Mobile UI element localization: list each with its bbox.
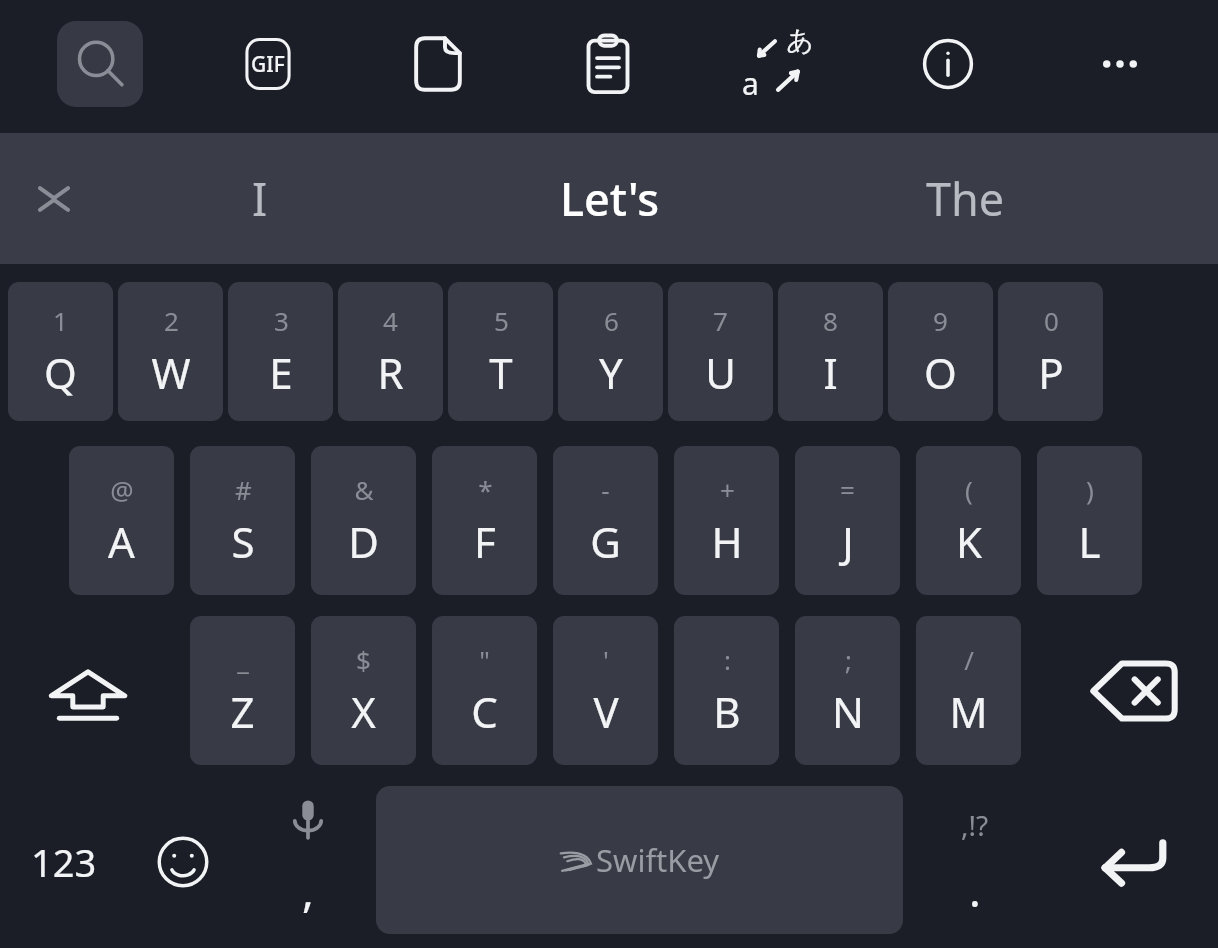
button[interactable]: 1 — [8, 282, 113, 421]
staticText: A — [108, 513, 135, 570]
staticText: 123 — [31, 836, 97, 888]
staticText: P — [1038, 344, 1064, 401]
staticText: = — [840, 472, 855, 507]
staticText: C — [471, 683, 498, 740]
staticText: - — [601, 472, 610, 507]
staticText: 8 — [823, 303, 838, 338]
staticText: 3 — [274, 303, 289, 338]
button[interactable]: - — [553, 446, 658, 595]
button[interactable]: GIF — [225, 21, 311, 107]
staticText: ; — [845, 642, 852, 677]
button[interactable]: / — [916, 616, 1021, 765]
staticText: 2 — [164, 303, 179, 338]
staticText: T — [489, 344, 513, 401]
staticText: 6 — [604, 303, 619, 338]
staticText: ( — [965, 472, 973, 507]
button[interactable]: 9 — [888, 282, 993, 421]
button[interactable]: 7 — [668, 282, 773, 421]
button[interactable]: ) — [1037, 446, 1142, 595]
staticText: / — [964, 642, 974, 677]
button[interactable]: Space — [376, 786, 903, 934]
button[interactable]: 5 — [448, 282, 553, 421]
button[interactable]: 8 — [778, 282, 883, 421]
staticText: @ — [110, 472, 134, 507]
button[interactable]: Stickers — [395, 21, 481, 107]
staticText: # — [235, 472, 252, 507]
staticText: The — [926, 168, 1005, 229]
button[interactable]: + — [674, 446, 779, 595]
button[interactable]: Let's — [460, 133, 760, 264]
staticText: V — [593, 683, 619, 740]
staticText: 0 — [1044, 303, 1059, 338]
button[interactable]: Translate — [735, 21, 821, 107]
staticText: 5 — [494, 303, 509, 338]
button[interactable]: Comma, voice input — [248, 786, 368, 938]
button[interactable]: $ — [311, 616, 416, 765]
staticText: J — [842, 513, 854, 570]
staticText: D — [348, 513, 379, 570]
button[interactable]: : — [674, 616, 779, 765]
button[interactable]: 4 — [338, 282, 443, 421]
button[interactable]: ' — [553, 616, 658, 765]
staticText: あ — [786, 24, 814, 58]
button[interactable]: 123 — [0, 786, 128, 938]
staticText: N — [832, 683, 864, 740]
staticText: W — [151, 344, 191, 401]
staticText: M — [949, 683, 988, 740]
button[interactable]: " — [432, 616, 537, 765]
staticText: Z — [230, 683, 255, 740]
button[interactable]: I — [110, 133, 410, 264]
staticText: & — [354, 472, 374, 507]
button[interactable]: Backspace — [1058, 616, 1210, 765]
button[interactable]: = — [795, 446, 900, 595]
staticText: * — [478, 472, 493, 507]
button[interactable]: Collapse suggestions — [14, 133, 94, 264]
button[interactable]: ( — [916, 446, 1021, 595]
staticText: E — [269, 344, 293, 401]
staticText: a — [742, 63, 759, 104]
button[interactable]: 2 — [118, 282, 223, 421]
button[interactable]: Enter — [1050, 786, 1218, 938]
button[interactable]: Clipboard — [565, 21, 651, 107]
button[interactable]: Period, punctuation — [915, 786, 1035, 938]
button[interactable]: Info — [905, 21, 991, 107]
staticText: 9 — [933, 303, 948, 338]
button[interactable]: Search — [57, 21, 143, 107]
button[interactable]: & — [311, 446, 416, 595]
button[interactable]: @ — [69, 446, 174, 595]
staticText: Y — [599, 344, 623, 401]
button[interactable]: _ — [190, 616, 295, 765]
staticText: SwiftKey — [596, 839, 720, 881]
button[interactable]: The — [815, 133, 1115, 264]
button[interactable]: 0 — [998, 282, 1103, 421]
staticText: R — [377, 344, 404, 401]
staticText: I — [823, 344, 838, 401]
button[interactable]: * — [432, 446, 537, 595]
staticText: GIF — [251, 50, 285, 79]
button[interactable]: Shift — [8, 616, 168, 765]
staticText: G — [590, 513, 621, 570]
staticText: : — [724, 642, 731, 677]
staticText: S — [231, 513, 255, 570]
staticText: X — [351, 683, 376, 740]
staticText: 7 — [713, 303, 728, 338]
staticText: _ — [237, 642, 249, 677]
staticText: Let's — [560, 168, 660, 229]
staticText: F — [474, 513, 496, 570]
staticText: ' — [603, 642, 609, 677]
staticText: K — [956, 513, 982, 570]
staticText: ) — [1086, 472, 1094, 507]
staticText: , — [302, 860, 314, 920]
button[interactable]: # — [190, 446, 295, 595]
staticText: I — [252, 168, 268, 229]
button[interactable]: ; — [795, 616, 900, 765]
button[interactable]: More options — [1077, 21, 1163, 107]
button[interactable]: 3 — [228, 282, 333, 421]
staticText: H — [711, 513, 743, 570]
staticText: 4 — [383, 303, 398, 338]
staticText: $ — [356, 642, 371, 677]
staticText: Q — [44, 344, 77, 401]
button[interactable]: 6 — [558, 282, 663, 421]
staticText: L — [1078, 513, 1101, 570]
button[interactable]: Emoji — [128, 786, 238, 938]
